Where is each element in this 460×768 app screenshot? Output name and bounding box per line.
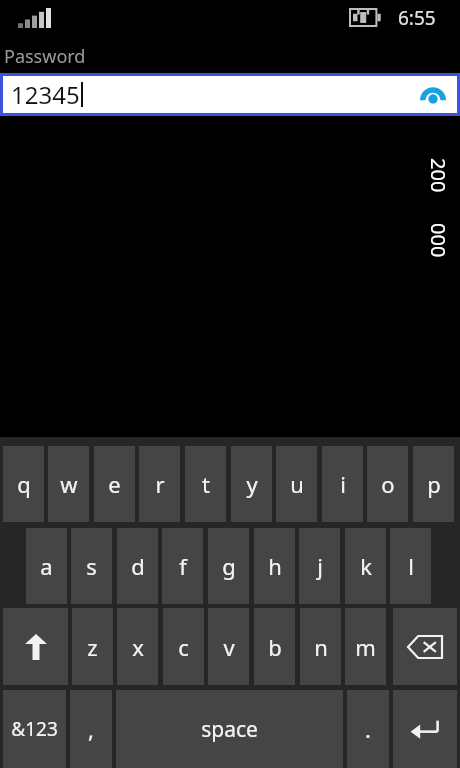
staticText: 200 [425,158,452,193]
button[interactable]: d [117,528,158,604]
staticText: d [131,551,145,581]
staticText: w [60,469,78,499]
staticText: b [268,632,282,662]
staticText: &123 [11,716,58,742]
button[interactable]: n [300,608,341,685]
staticText: y [246,469,258,499]
button[interactable]: x [117,608,158,685]
staticText: h [268,551,282,581]
button[interactable]: space [116,690,343,768]
button[interactable]: u [276,446,317,522]
staticText: k [360,551,372,581]
staticText: l [408,551,414,581]
staticText: g [222,551,236,581]
button[interactable]: Enter [393,690,457,768]
button[interactable]: w [48,446,89,522]
button[interactable]: z [72,608,113,685]
button[interactable]: k [345,528,386,604]
staticText: . [365,714,371,744]
button[interactable]: c [163,608,204,685]
other: Battery charging [350,9,383,26]
staticText: v [223,632,235,662]
staticText: m [355,632,376,662]
staticText: 12345 [11,78,80,111]
button[interactable]: y [231,446,272,522]
staticText: f [179,551,187,581]
staticText: z [87,632,98,662]
staticText: 6:55 [398,5,436,31]
staticText: c [178,632,189,662]
staticText: a [40,551,53,581]
staticText: Password [4,44,86,69]
button[interactable]: , [70,690,112,768]
button[interactable]: Show password [420,86,446,104]
button[interactable]: q [3,446,44,522]
button[interactable]: b [254,608,295,685]
staticText: o [381,469,395,499]
staticText: x [132,632,144,662]
button[interactable]: 12345 [0,73,460,116]
staticText: t [202,469,210,499]
staticText: , [88,714,94,744]
button[interactable]: i [322,446,363,522]
button[interactable]: j [299,528,340,604]
staticText: r [155,469,165,499]
button[interactable]: m [345,608,386,685]
staticText: j [317,551,323,581]
button[interactable]: &123 [3,690,66,768]
button[interactable]: v [208,608,249,685]
button[interactable]: r [139,446,180,522]
button[interactable]: o [367,446,408,522]
button[interactable]: e [94,446,135,522]
button[interactable]: t [185,446,226,522]
button[interactable]: p [413,446,454,522]
staticText: e [108,469,121,499]
staticText: p [427,469,441,499]
button[interactable]: Backspace [393,608,457,685]
button[interactable]: h [254,528,295,604]
button[interactable]: a [26,528,67,604]
staticText: n [314,632,328,662]
staticText: space [201,715,258,744]
staticText: 000 [425,223,452,258]
staticText: i [340,469,346,499]
staticText: q [17,469,31,499]
button[interactable]: s [71,528,112,604]
button[interactable]: Shift [3,608,68,685]
staticText: u [290,469,304,499]
button[interactable]: g [208,528,249,604]
button[interactable]: . [347,690,389,768]
staticText: s [86,551,97,581]
button[interactable]: f [162,528,203,604]
button[interactable]: l [390,528,431,604]
